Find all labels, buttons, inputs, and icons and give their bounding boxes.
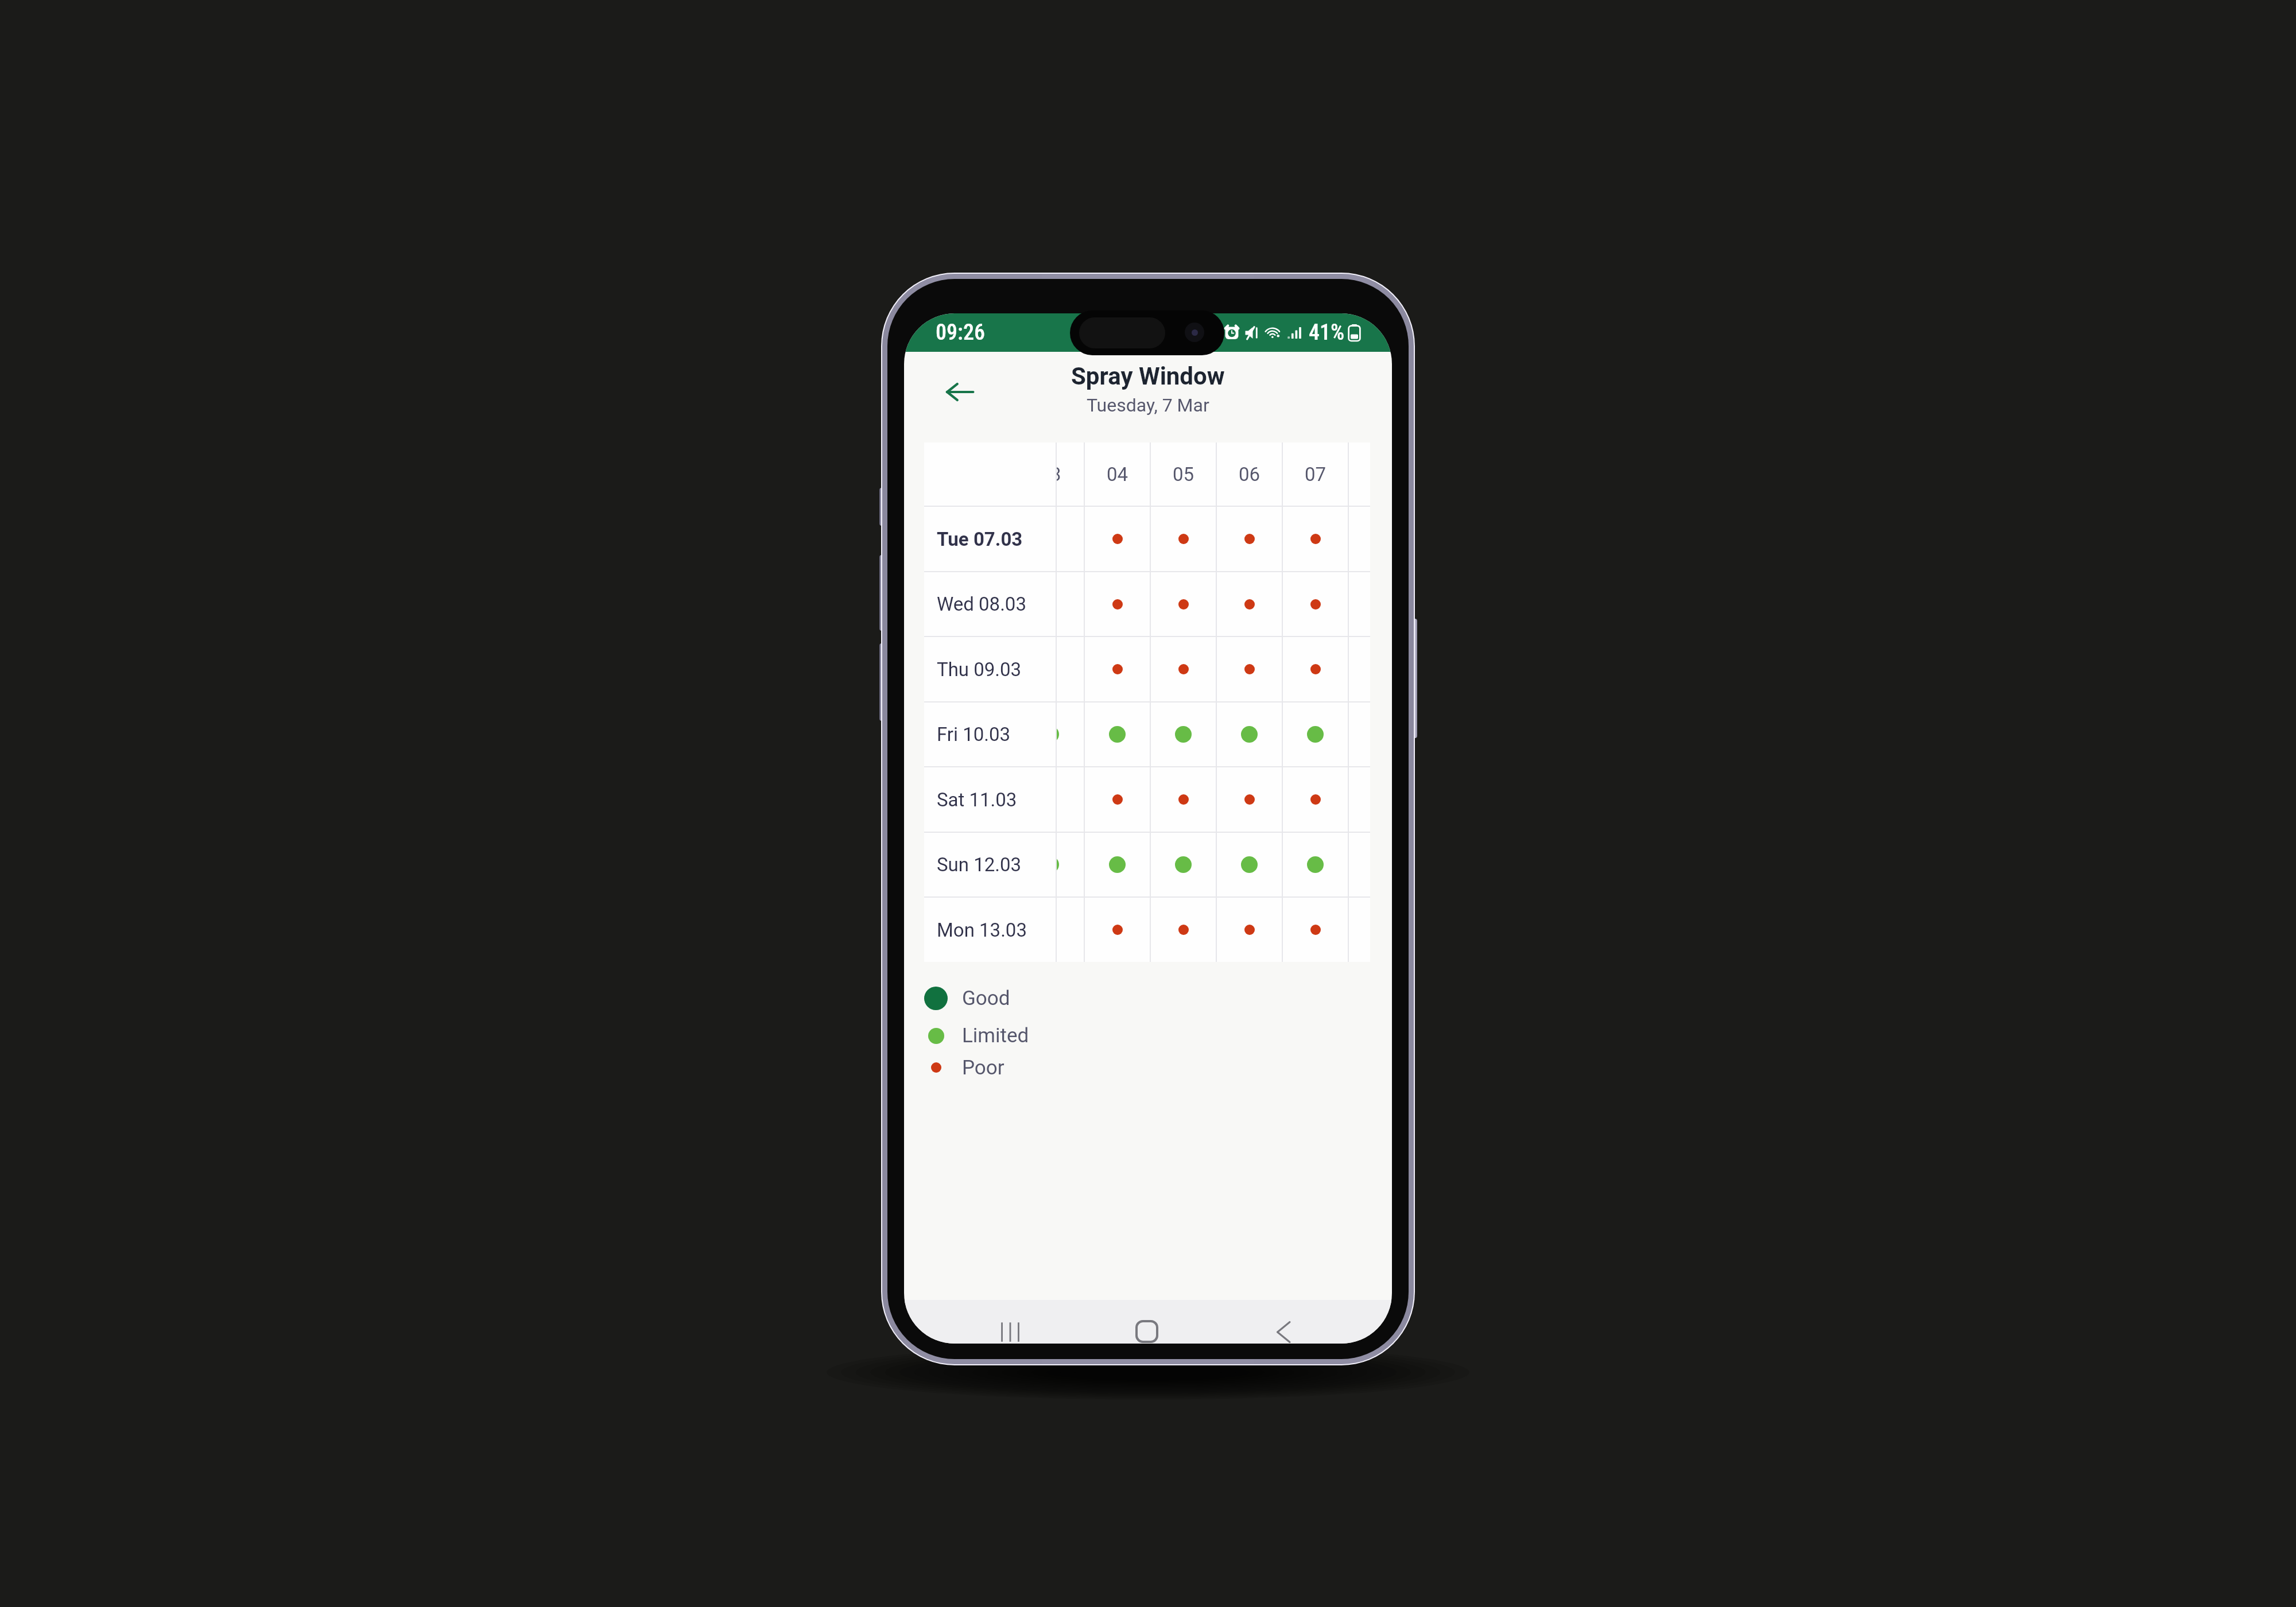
staticText: 04 — [1107, 463, 1128, 486]
button[interactable]: Sat 11.03 — [924, 767, 1370, 832]
staticText: Tuesday, 7 Mar — [1087, 394, 1209, 416]
staticText: 07 — [1305, 463, 1327, 486]
button[interactable]: Home — [1115, 1300, 1178, 1344]
staticText: Sat 11.03 — [937, 789, 1017, 811]
staticText: 41% — [1309, 320, 1345, 346]
button[interactable]: Wed 08.03 — [924, 572, 1370, 636]
staticText: 06 — [1239, 463, 1261, 486]
button[interactable]: Back — [1252, 1300, 1315, 1344]
staticText: Tue 07.03 — [937, 528, 1023, 550]
button[interactable]: Fri 10.03 — [924, 702, 1370, 766]
staticText: 3 — [1057, 463, 1061, 486]
button[interactable]: Thu 09.03 — [924, 637, 1370, 701]
button[interactable]: Limited — [904, 1017, 1392, 1054]
staticText: Spray Window — [1071, 362, 1225, 390]
button[interactable]: Poor — [904, 1054, 1392, 1081]
button[interactable]: Recent apps — [979, 1300, 1042, 1344]
staticText: Good — [962, 987, 1010, 1010]
button[interactable]: Good — [904, 980, 1392, 1017]
button[interactable]: Mon 13.03 — [924, 898, 1370, 962]
staticText: Wed 08.03 — [937, 593, 1026, 615]
staticText: 05 — [1173, 463, 1194, 486]
staticText: Poor — [962, 1056, 1004, 1080]
staticText: Sun 12.03 — [937, 853, 1022, 876]
button[interactable]: Tue 07.03 — [924, 507, 1370, 571]
button[interactable]: Back — [934, 367, 985, 417]
staticText: Mon 13.03 — [937, 919, 1027, 941]
button[interactable]: Sun 12.03 — [924, 833, 1370, 896]
staticText: Limited — [962, 1024, 1029, 1047]
staticText: 09:26 — [936, 320, 985, 346]
staticText: Thu 09.03 — [937, 658, 1022, 681]
staticText: Fri 10.03 — [937, 723, 1011, 746]
